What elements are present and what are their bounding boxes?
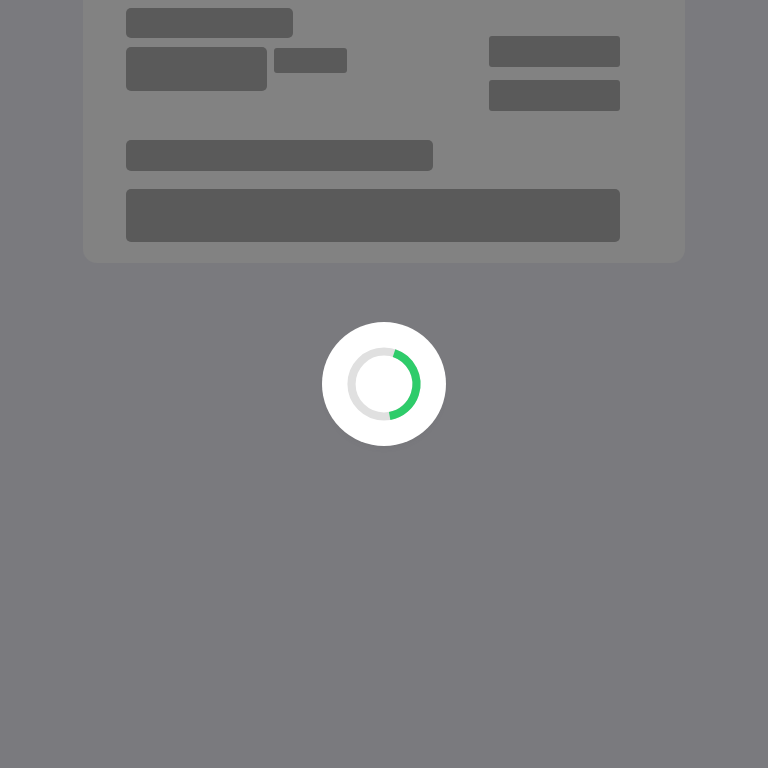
button[interactable]	[83, 0, 685, 263]
button[interactable]: Loading	[322, 322, 446, 446]
